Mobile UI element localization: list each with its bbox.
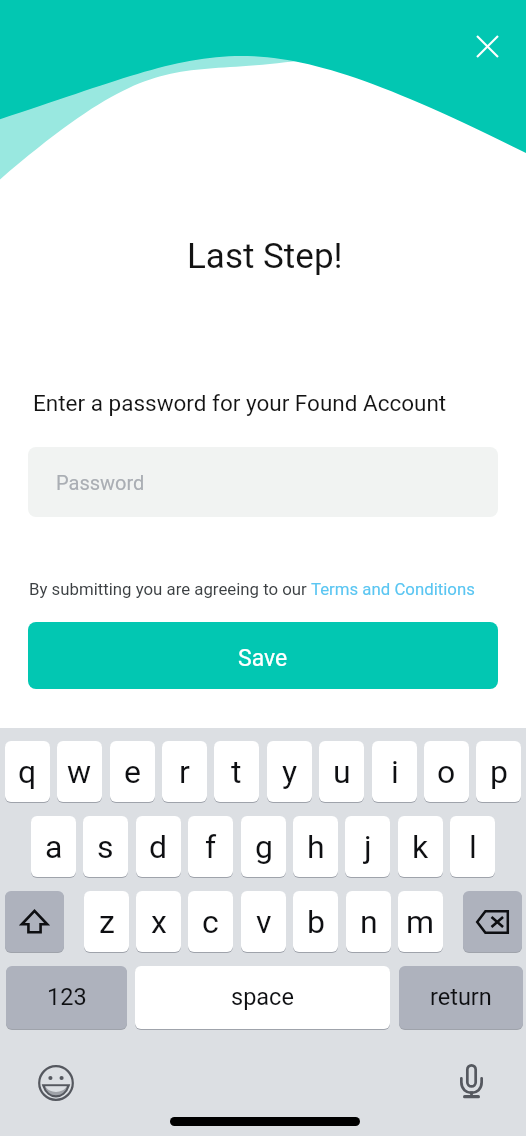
staticText: a — [45, 828, 63, 866]
staticText: n — [360, 903, 378, 941]
staticText: Enter a password for your Found Account — [33, 390, 447, 416]
staticText: r — [179, 753, 190, 791]
staticText: y — [282, 753, 298, 791]
button[interactable]: o — [424, 741, 469, 802]
button[interactable]: Shift — [5, 891, 64, 952]
button[interactable]: x — [136, 891, 181, 952]
staticText: q — [18, 753, 37, 791]
button[interactable]: h — [293, 816, 338, 877]
button[interactable]: j — [345, 816, 390, 877]
staticText: By submitting you are agreeing to our — [29, 579, 311, 599]
staticText: Password — [56, 471, 145, 494]
button[interactable]: p — [476, 741, 521, 802]
staticText: Save — [238, 645, 288, 672]
button[interactable]: e — [110, 741, 155, 802]
staticText: l — [469, 828, 477, 866]
button[interactable]: z — [84, 891, 129, 952]
button[interactable]: k — [398, 816, 443, 877]
button[interactable]: 123 — [6, 966, 127, 1029]
staticText: p — [490, 753, 508, 791]
button[interactable]: r — [162, 741, 207, 802]
button[interactable]: Terms and Conditions — [311, 579, 475, 599]
button[interactable]: a — [31, 816, 76, 877]
staticText: x — [151, 903, 167, 941]
button[interactable]: y — [267, 741, 312, 802]
button[interactable]: return — [399, 966, 523, 1029]
staticText: m — [406, 903, 435, 941]
button[interactable]: b — [293, 891, 338, 952]
button[interactable]: space — [135, 966, 390, 1029]
staticText: z — [99, 903, 115, 941]
button[interactable]: t — [214, 741, 259, 802]
button[interactable]: q — [5, 741, 50, 802]
staticText: o — [437, 753, 456, 791]
staticText: d — [149, 828, 168, 866]
staticText: t — [231, 753, 242, 791]
staticText: k — [412, 828, 429, 866]
button[interactable]: s — [83, 816, 128, 877]
staticText: 123 — [47, 983, 87, 1011]
staticText: j — [364, 828, 372, 866]
button[interactable]: g — [241, 816, 286, 877]
button[interactable]: d — [136, 816, 181, 877]
button[interactable]: Save — [28, 622, 498, 689]
staticText: w — [67, 753, 92, 791]
button[interactable]: c — [188, 891, 233, 952]
staticText: space — [231, 983, 294, 1011]
staticText: c — [202, 903, 219, 941]
button[interactable]: m — [398, 891, 443, 952]
staticText: g — [255, 828, 273, 866]
button[interactable]: l — [450, 816, 495, 877]
staticText: e — [124, 753, 141, 791]
button[interactable]: f — [188, 816, 233, 877]
button[interactable]: v — [241, 891, 286, 952]
button[interactable]: u — [319, 741, 364, 802]
button[interactable]: w — [57, 741, 102, 802]
button[interactable]: i — [372, 741, 417, 802]
staticText: Last Step! — [187, 236, 343, 277]
staticText: i — [391, 753, 399, 791]
staticText: s — [97, 828, 114, 866]
staticText: b — [307, 903, 325, 941]
staticText: u — [333, 753, 351, 791]
button[interactable]: n — [346, 891, 391, 952]
button[interactable]: Emoji keyboard — [34, 1061, 78, 1105]
staticText: v — [256, 903, 272, 941]
button[interactable]: Voice input — [449, 1059, 493, 1103]
button[interactable]: Close — [464, 23, 510, 69]
button[interactable]: Password — [28, 447, 498, 517]
button[interactable]: Backspace — [463, 891, 522, 952]
staticText: h — [307, 828, 325, 866]
staticText: return — [430, 983, 492, 1011]
staticText: f — [205, 828, 217, 866]
